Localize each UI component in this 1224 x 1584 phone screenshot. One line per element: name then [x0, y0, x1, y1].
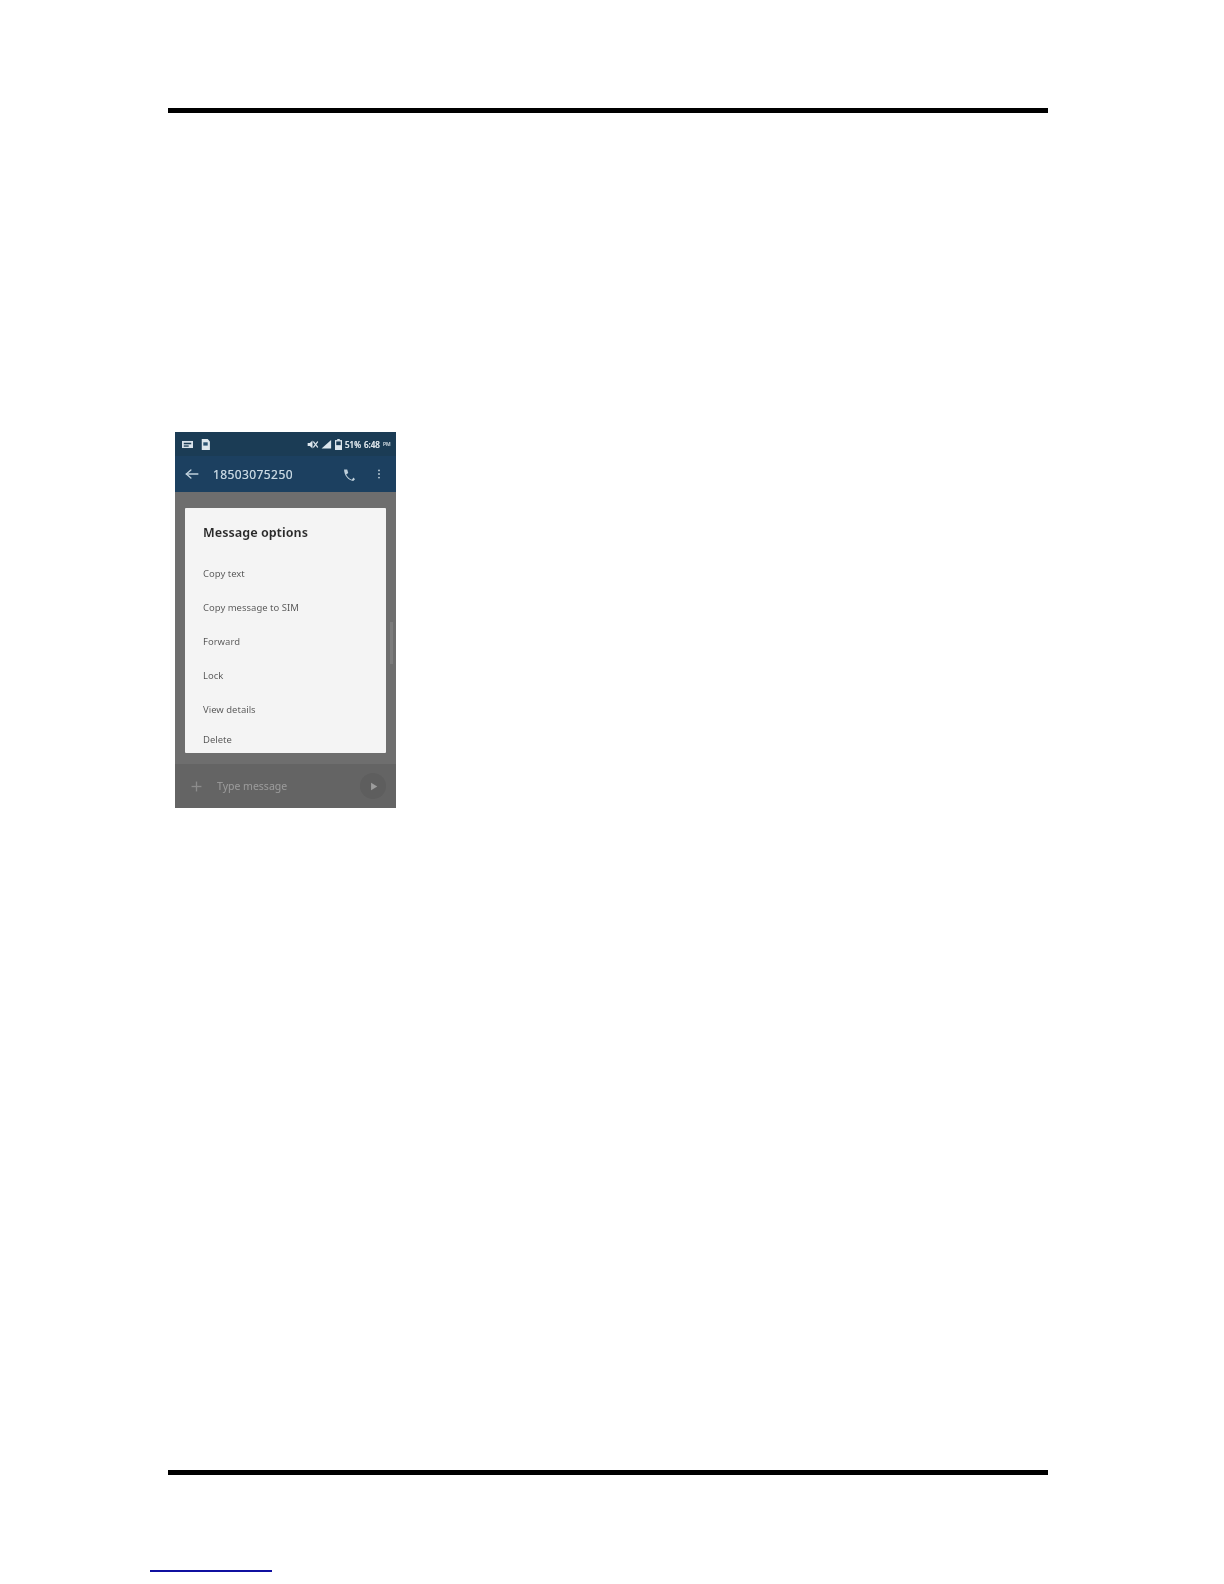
- staticText: Lock: [203, 669, 224, 682]
- staticText: 18503075250: [213, 466, 293, 482]
- button[interactable]: Send: [360, 773, 386, 799]
- button[interactable]: Add attachment: [183, 773, 209, 799]
- staticText: 6:48: [364, 439, 380, 450]
- staticText: Copy text: [203, 567, 245, 580]
- button[interactable]: Copy text: [203, 556, 376, 590]
- button[interactable]: Back: [175, 457, 209, 491]
- button[interactable]: Lock: [203, 658, 376, 692]
- staticText: PM: [383, 441, 391, 448]
- button[interactable]: Call: [332, 458, 364, 490]
- button[interactable]: More options: [364, 459, 394, 489]
- staticText: Delete: [203, 733, 232, 746]
- button[interactable]: Forward: [203, 624, 376, 658]
- staticText: Forward: [203, 635, 240, 648]
- staticText: Copy message to SIM: [203, 601, 299, 614]
- button[interactable]: Delete: [203, 726, 376, 753]
- staticText: 51%: [345, 439, 361, 450]
- staticText: Message options: [203, 524, 308, 541]
- staticText: View details: [203, 703, 256, 716]
- button[interactable]: Type message: [217, 764, 354, 808]
- button[interactable]: Copy message to SIM: [203, 590, 376, 624]
- button[interactable]: View details: [203, 692, 376, 726]
- staticText: Type message: [217, 779, 288, 793]
